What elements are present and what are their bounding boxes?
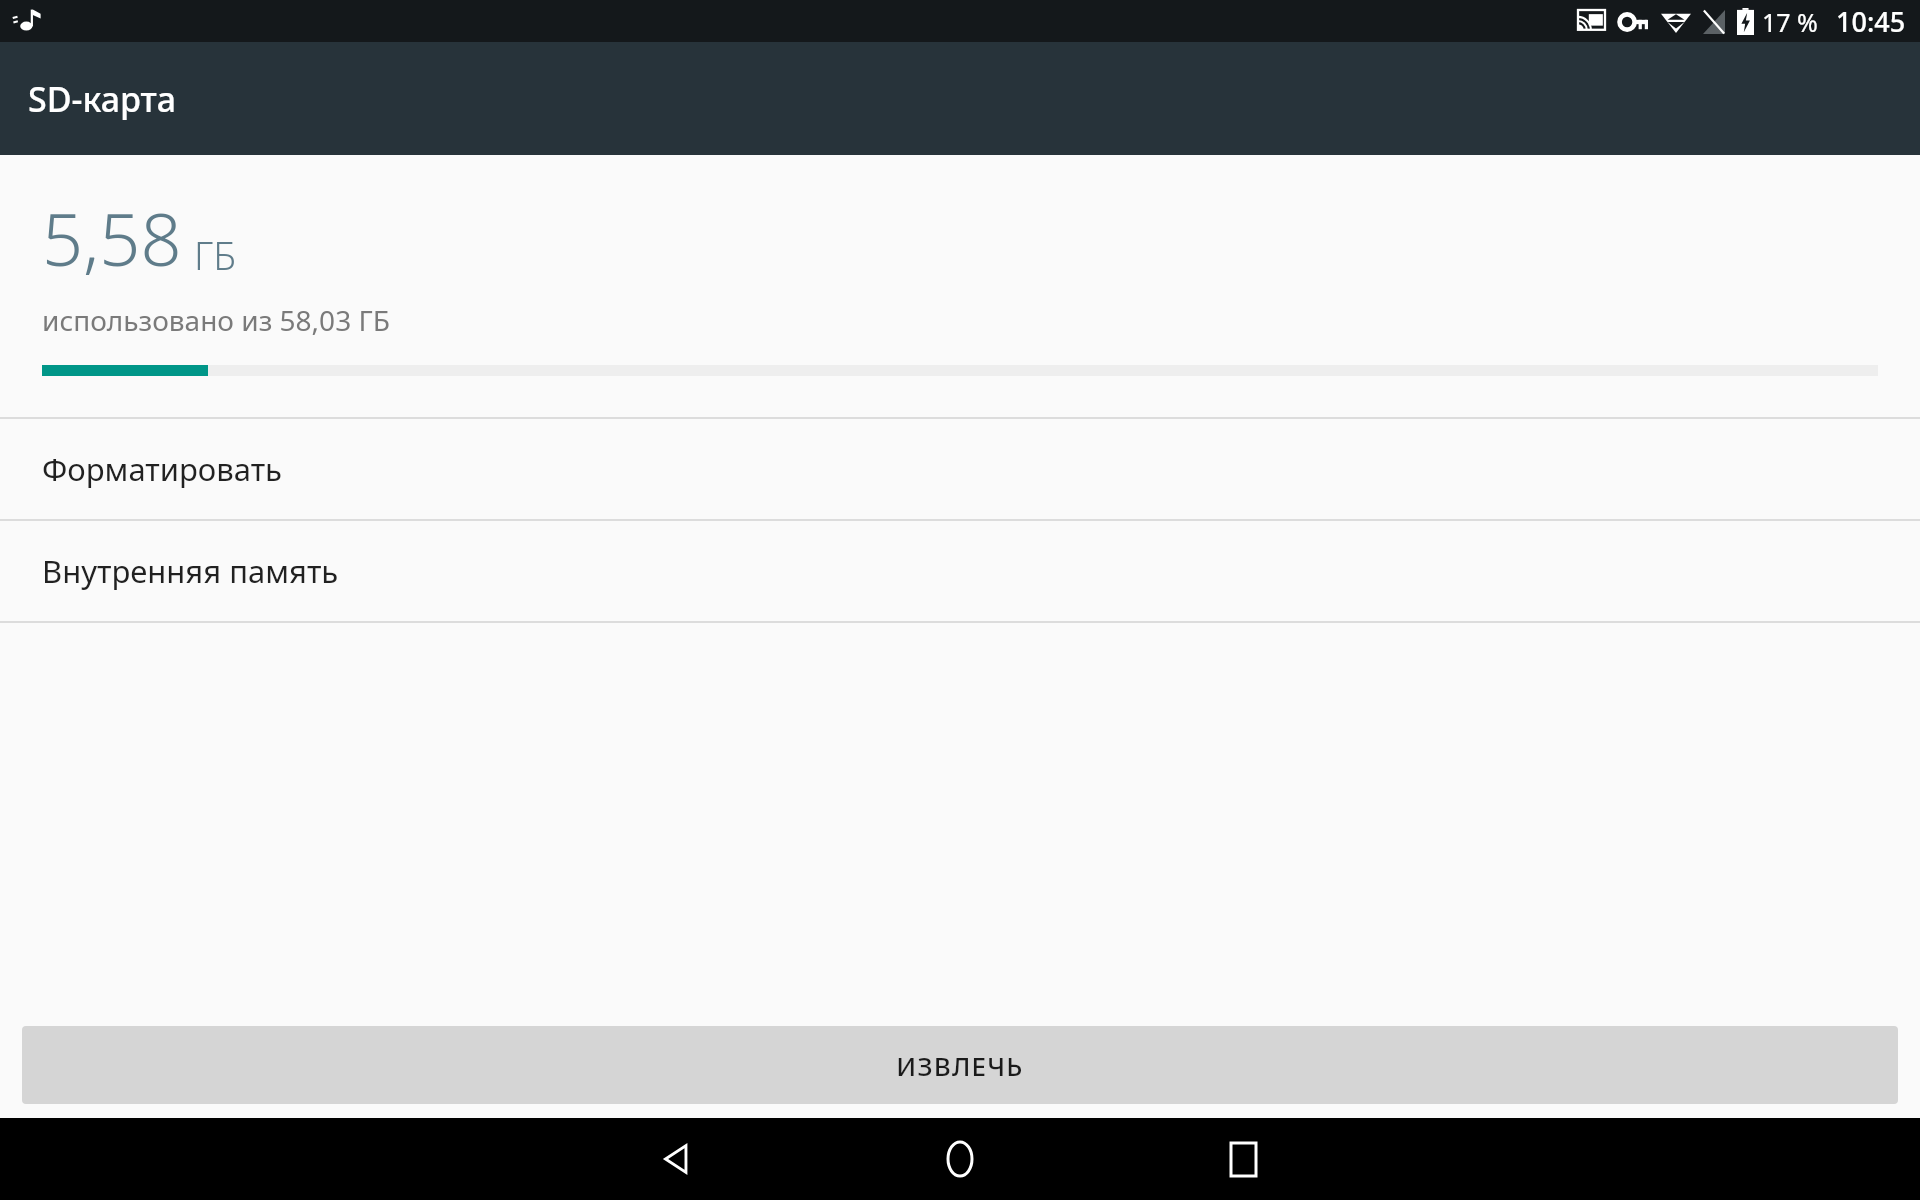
staticText: 10:45 [1836,3,1906,40]
button[interactable]: Home [905,1118,1015,1200]
button[interactable]: Back [622,1118,732,1200]
button[interactable]: ИЗВЛЕЧЬ [22,1026,1898,1104]
staticText: использовано из 58,03 ГБ [42,301,390,339]
staticText: ИЗВЛЕЧЬ [896,1048,1024,1083]
staticText: ГБ [194,229,236,281]
staticText: 17 % [1762,5,1818,39]
button[interactable]: Recent apps [1188,1118,1298,1200]
staticText: Форматировать [42,448,282,490]
staticText: 5,58 [42,189,182,287]
button[interactable]: Внутренняя память [0,521,1920,621]
staticText: SD-карта [28,76,177,122]
button[interactable]: Форматировать [0,419,1920,519]
staticText: Внутренняя память [42,550,339,592]
